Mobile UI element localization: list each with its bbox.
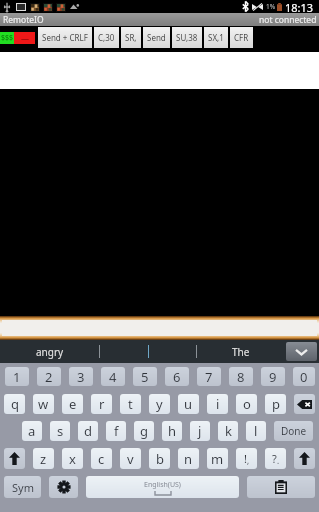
button[interactable]: 8 [229,367,253,386]
button[interactable]: Sym [4,476,41,498]
staticText: 4 [109,368,117,386]
staticText: 8 [237,368,245,386]
staticText: 2 [45,368,53,386]
button[interactable]: c [91,448,112,469]
button[interactable]: m [207,448,228,469]
button[interactable]: e [62,394,83,414]
button[interactable]: SX,1 [204,27,228,48]
button[interactable]: j [190,421,210,441]
button[interactable]: u [178,394,199,414]
button[interactable]: ! [236,448,257,469]
staticText: t [128,395,133,413]
button[interactable]: l [246,421,266,441]
button[interactable]: p [265,394,286,414]
button[interactable]: Done [274,421,313,441]
staticText: n [184,450,193,468]
staticText: g [140,422,148,440]
staticText: l [254,422,258,440]
staticText: not connected [259,14,317,26]
button[interactable]: CFR [230,27,253,48]
button[interactable]: Backspace [294,394,315,414]
staticText: 6 [173,368,181,386]
button[interactable]: d [78,421,98,441]
staticText: . [277,455,280,466]
button[interactable]: w [33,394,54,414]
button[interactable]: s [50,421,70,441]
staticText: o [243,395,251,413]
staticText: SX,1 [208,32,224,43]
button[interactable]: ? [265,448,286,469]
staticText: English(US) [144,480,181,490]
button[interactable]: 5 [133,367,157,386]
button[interactable]: SU,38 [172,27,202,48]
button[interactable]: i [207,394,228,414]
button[interactable]: o [236,394,257,414]
button[interactable]: Status off [14,32,35,44]
button[interactable]: q [4,394,25,414]
staticText: 5 [141,368,149,386]
staticText: ? [272,451,277,466]
button[interactable]: 2 [37,367,61,386]
button[interactable]: Clipboard [247,476,315,498]
button[interactable]: g [134,421,154,441]
button[interactable]: 1 [5,367,29,386]
staticText: , [247,455,250,466]
button[interactable]: SR, [121,27,141,48]
staticText: u [184,395,193,413]
button[interactable]: v [120,448,141,469]
staticText: 9 [269,368,277,386]
staticText: m [211,450,224,468]
staticText: 1 [13,368,21,386]
staticText: Sym [12,480,34,495]
staticText: The [232,345,250,359]
button[interactable]: 6 [165,367,189,386]
staticText: 3 [77,368,85,386]
button[interactable]: Status on [0,32,14,44]
button[interactable]: 3 [69,367,93,386]
button[interactable]: b [149,448,170,469]
button[interactable]: z [33,448,54,469]
staticText: y [156,395,163,413]
staticText: 18:13 [285,0,314,13]
button[interactable]: 7 [197,367,221,386]
staticText: e [69,395,77,413]
staticText: c [98,450,105,468]
button[interactable]: Space [86,476,239,498]
staticText: ! [244,451,247,466]
button[interactable]: Shift [4,448,25,469]
button[interactable]: Input settings [49,476,78,498]
button[interactable]: The [197,340,284,363]
button[interactable]: More suggestions [286,342,317,361]
button[interactable]: Send [143,27,170,48]
button[interactable]: x [62,448,83,469]
staticText: p [272,395,280,413]
staticText: a [28,422,36,440]
button[interactable]: Text input [0,316,319,340]
staticText: z [40,450,47,468]
button[interactable]: 9 [261,367,285,386]
button[interactable]: r [91,394,112,414]
button[interactable]: f [106,421,126,441]
button[interactable]: Shift [294,448,315,469]
button[interactable]: t [120,394,141,414]
button[interactable]: 4 [101,367,125,386]
staticText: — [21,33,29,44]
button[interactable]: 0 [293,367,315,386]
button[interactable]: C,30 [94,27,119,48]
button[interactable]: k [218,421,238,441]
button[interactable]: n [178,448,199,469]
button[interactable]: y [149,394,170,414]
staticText: Done [281,424,307,438]
staticText: 7 [205,368,213,386]
staticText: Send [147,32,166,43]
button[interactable]: Send + CRLF [38,27,92,48]
button[interactable]: a [22,421,42,441]
button[interactable]: angry [0,340,99,363]
staticText: f [114,422,119,440]
button[interactable]: h [162,421,182,441]
staticText: j [198,422,202,440]
staticText: w [38,395,49,413]
staticText: angry [36,345,64,359]
